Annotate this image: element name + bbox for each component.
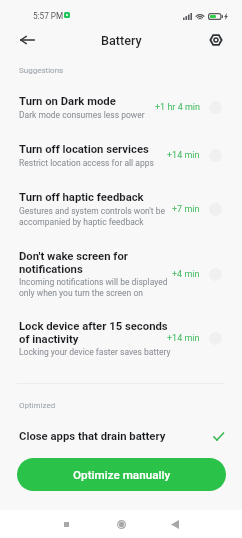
staticText: +1 hr 4 min xyxy=(155,102,200,113)
staticText: +4 min xyxy=(172,269,200,280)
button[interactable]: Apply suggestion xyxy=(209,149,222,162)
staticText: Turn off haptic feedback xyxy=(19,191,144,204)
staticText: +7 min xyxy=(172,204,200,215)
button[interactable]: Apply suggestion xyxy=(209,101,222,114)
staticText: Gestures and system controls won't be ac… xyxy=(19,206,171,227)
staticText: Suggestions xyxy=(19,66,64,75)
button[interactable]: Back xyxy=(165,514,185,534)
staticText: Optimize manually xyxy=(73,468,171,482)
button[interactable]: Apply suggestion xyxy=(209,332,222,345)
staticText: +14 min xyxy=(167,150,200,161)
staticText: Lock device after 15 seconds of inactivi… xyxy=(19,320,171,345)
staticText: 5:57 PM xyxy=(33,11,64,21)
button[interactable]: Close apps that drain battery xyxy=(0,430,242,443)
button[interactable]: Turn off location services xyxy=(0,131,242,179)
button[interactable]: Turn off haptic feedback xyxy=(0,179,242,239)
button[interactable]: Lock device after 15 seconds of inactivi… xyxy=(0,309,242,368)
button[interactable]: Don't wake screen for notifications xyxy=(0,239,242,309)
staticText: Incoming notifications will be displayed… xyxy=(19,277,171,298)
staticText: Restrict location access for all apps xyxy=(19,158,154,168)
staticText: Turn off location services xyxy=(19,143,149,156)
staticText: Don't wake screen for notifications xyxy=(19,250,171,275)
staticText: Locking your device faster saves battery xyxy=(19,347,171,357)
button[interactable]: Apply suggestion xyxy=(209,268,222,281)
staticText: +14 min xyxy=(167,333,200,344)
staticText: Close apps that drain battery xyxy=(19,430,213,443)
button[interactable]: Back xyxy=(13,26,41,54)
staticText: Dark mode consumes less power xyxy=(19,110,145,120)
button[interactable]: Apply suggestion xyxy=(209,203,222,216)
button[interactable]: Home xyxy=(111,514,131,534)
staticText: Optimized xyxy=(19,401,56,410)
button[interactable]: Turn on Dark mode xyxy=(0,83,242,131)
staticText: Battery xyxy=(101,33,142,48)
button[interactable]: Settings xyxy=(202,26,230,54)
staticText: Turn on Dark mode xyxy=(19,95,116,108)
button[interactable]: Recents xyxy=(56,514,76,534)
button[interactable]: Optimize manually xyxy=(17,458,226,491)
